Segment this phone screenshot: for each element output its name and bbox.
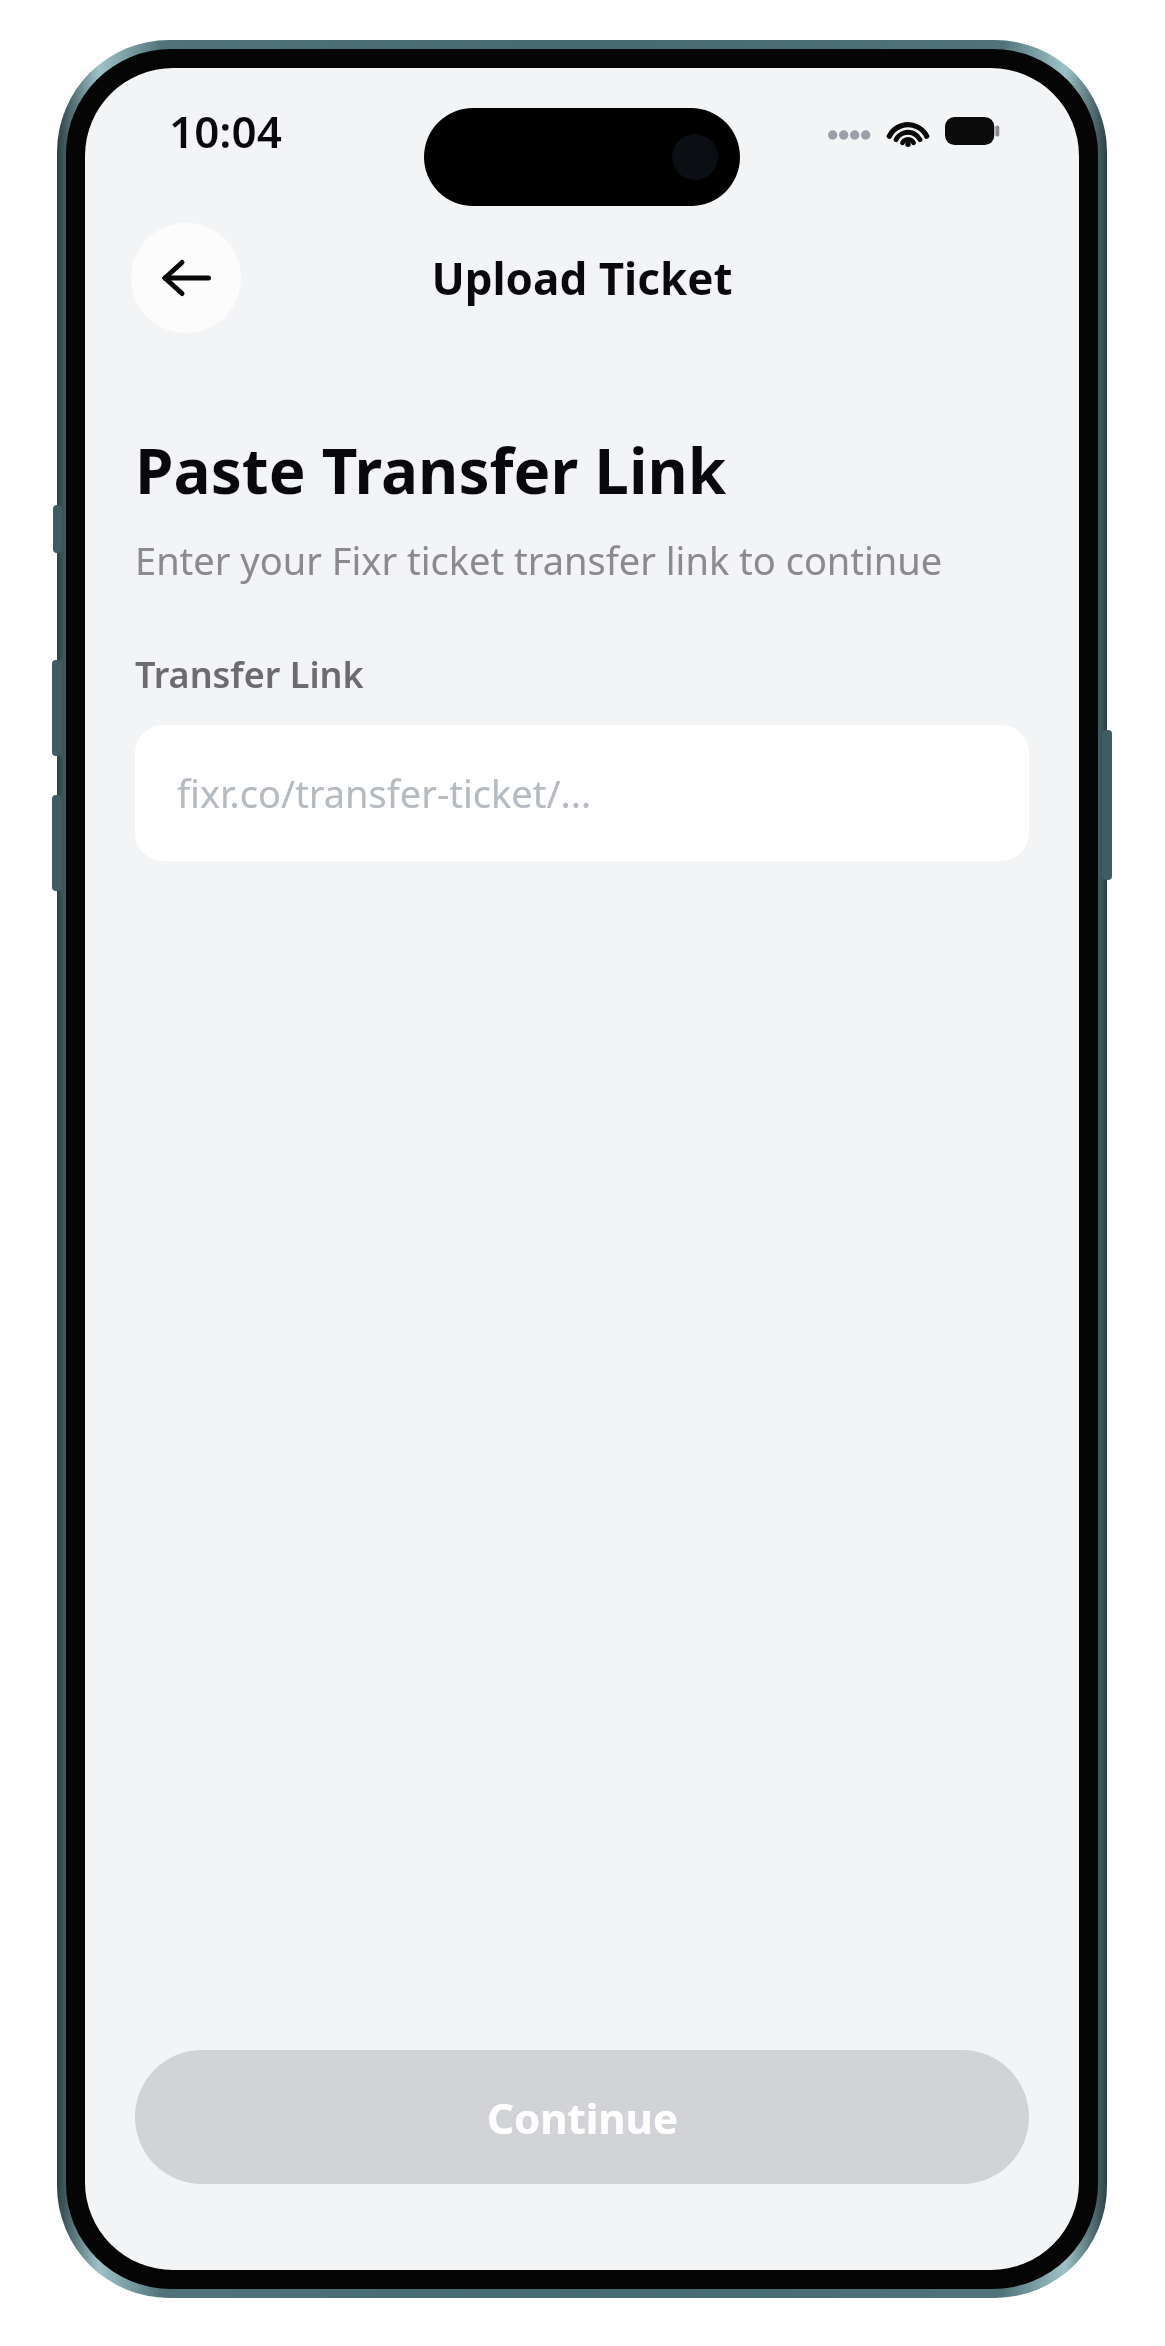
staticText: fixr.co/transfer-ticket/... bbox=[177, 767, 592, 819]
staticText: Continue bbox=[487, 2089, 678, 2146]
staticText: Paste Transfer Link bbox=[135, 428, 727, 512]
button[interactable]: fixr.co/transfer-ticket/... bbox=[135, 725, 1029, 861]
button[interactable]: Back bbox=[131, 223, 241, 333]
staticText: Enter your Fixr ticket transfer link to … bbox=[135, 534, 943, 586]
staticText: Upload Ticket bbox=[431, 248, 733, 308]
button[interactable]: Continue bbox=[135, 2050, 1029, 2184]
staticText: Transfer Link bbox=[135, 650, 364, 699]
staticText: 10:04 bbox=[169, 101, 282, 161]
